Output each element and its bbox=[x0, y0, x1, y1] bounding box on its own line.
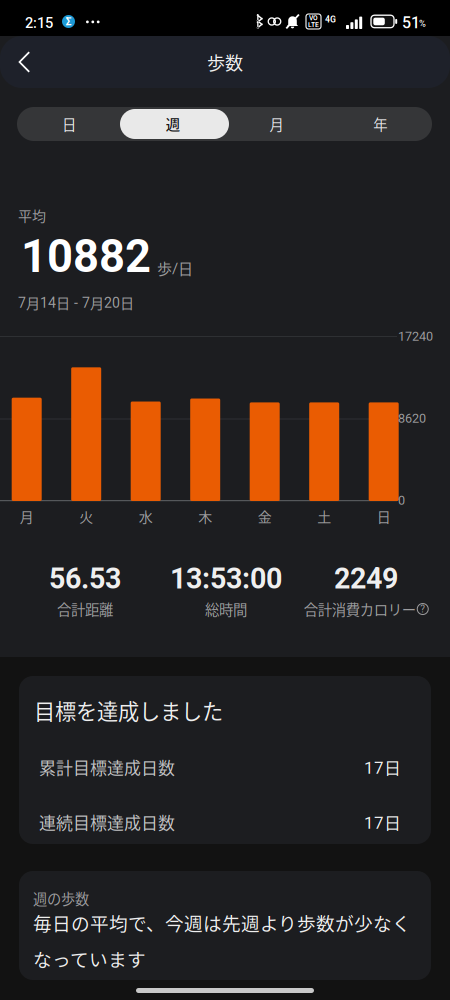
staticText: 累計目標達成日数 bbox=[39, 755, 175, 779]
staticText: 13:53:00 bbox=[170, 562, 282, 596]
staticText: 火 bbox=[79, 506, 93, 526]
staticText: 8620 bbox=[398, 411, 426, 426]
staticText: 週の歩数 bbox=[33, 888, 89, 909]
staticText: 17日 bbox=[364, 755, 401, 779]
staticText: 目標を達成しました bbox=[34, 695, 223, 726]
staticText: 週 bbox=[166, 114, 180, 134]
button[interactable]: 連続目標達成日数 bbox=[19, 795, 431, 850]
staticText: 合計消費カロリー bbox=[304, 599, 416, 619]
staticText: 51 bbox=[402, 13, 420, 32]
staticText: 17240 bbox=[398, 329, 433, 344]
staticText: % bbox=[419, 18, 426, 29]
staticText: 水 bbox=[139, 506, 153, 526]
staticText: 毎日の平均で、今週は先週より歩数が少なくなっています bbox=[33, 909, 411, 972]
staticText: 日 bbox=[62, 114, 76, 134]
staticText: 木 bbox=[198, 506, 212, 526]
staticText: 7月14日 - 7月20日 bbox=[18, 292, 134, 312]
staticText: 金 bbox=[258, 506, 272, 526]
staticText: 総時間 bbox=[205, 599, 247, 619]
button[interactable]: 週 bbox=[121, 107, 225, 141]
staticText: 歩/日 bbox=[157, 257, 193, 279]
staticText: 10882 bbox=[21, 230, 151, 283]
staticText: 土 bbox=[317, 506, 331, 526]
button[interactable]: 累計目標達成日数 bbox=[19, 740, 431, 795]
staticText: ? bbox=[420, 603, 425, 615]
staticText: 2:15 bbox=[25, 14, 53, 32]
staticText: 合計距離 bbox=[57, 599, 113, 619]
staticText: 年 bbox=[373, 114, 387, 134]
staticText: 日 bbox=[377, 506, 391, 526]
staticText: 平均 bbox=[18, 205, 46, 225]
button[interactable]: 月 bbox=[224, 107, 328, 141]
staticText: 月 bbox=[20, 506, 34, 526]
staticText: 4G bbox=[325, 14, 336, 25]
staticText: VO bbox=[309, 14, 318, 22]
staticText: 17日 bbox=[364, 810, 401, 834]
button[interactable]: 戻る bbox=[0, 36, 48, 88]
staticText: LTE bbox=[308, 21, 319, 29]
staticText: 56.53 bbox=[49, 562, 121, 596]
button[interactable]: 日 bbox=[17, 107, 121, 141]
staticText: 連続目標達成日数 bbox=[39, 810, 175, 834]
staticText: 月 bbox=[269, 114, 283, 134]
staticText: 0 bbox=[398, 493, 405, 508]
staticText: Σ bbox=[65, 15, 71, 28]
button[interactable]: 年 bbox=[328, 107, 432, 141]
staticText: 2249 bbox=[334, 562, 398, 596]
staticText: 歩数 bbox=[207, 49, 243, 75]
